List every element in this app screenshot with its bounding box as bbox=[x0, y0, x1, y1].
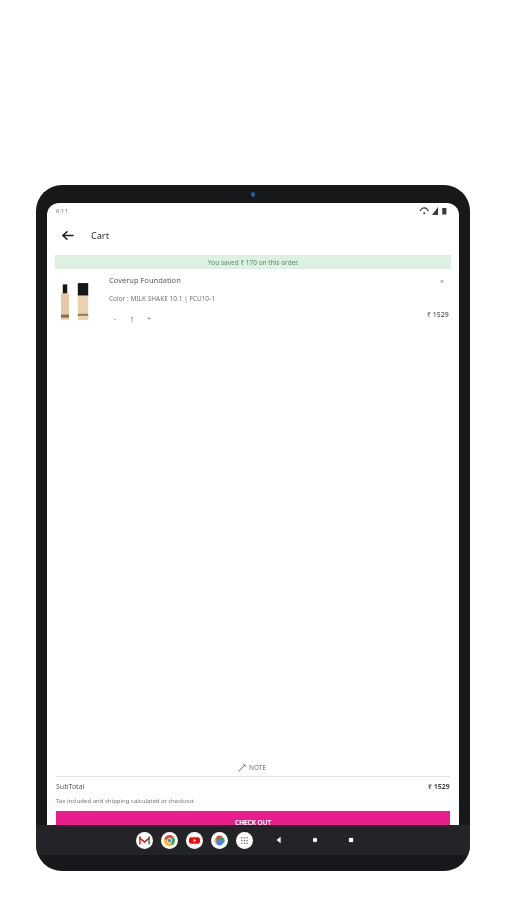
button[interactable]: Back bbox=[56, 224, 78, 246]
button[interactable]: Gmail bbox=[136, 832, 153, 849]
button[interactable]: CHECK OUT bbox=[56, 811, 450, 833]
button[interactable]: Home bbox=[307, 832, 323, 848]
button[interactable]: Photos bbox=[211, 832, 228, 849]
staticText: Tax included and shipping calculated at … bbox=[56, 797, 194, 805]
staticText: 1 bbox=[130, 315, 134, 324]
button[interactable]: Recents bbox=[343, 832, 359, 848]
button[interactable]: Remove item bbox=[435, 275, 449, 289]
staticText: Coverup Foundation bbox=[109, 275, 181, 285]
staticText: + bbox=[147, 314, 152, 324]
staticText: × bbox=[440, 277, 445, 287]
staticText: ₹ 1529 bbox=[428, 782, 450, 792]
button[interactable]: Back bbox=[271, 832, 287, 848]
staticText: You saved ₹ 170 on this order. bbox=[208, 258, 299, 267]
button[interactable]: - bbox=[109, 313, 121, 325]
button[interactable]: NOTE bbox=[47, 758, 459, 776]
staticText: SubTotal bbox=[56, 782, 85, 792]
staticText: Color : MILK SHAKE 10.1 | FCU10-1 bbox=[109, 294, 215, 303]
staticText: ₹ 1529 bbox=[427, 310, 449, 320]
staticText: - bbox=[114, 314, 117, 324]
staticText: NOTE bbox=[249, 763, 267, 772]
staticText: 6:11 bbox=[56, 207, 68, 215]
staticText: CHECK OUT bbox=[235, 818, 272, 827]
staticText: Cart bbox=[91, 229, 110, 241]
button[interactable]: YouTube bbox=[186, 832, 203, 849]
button[interactable]: All apps bbox=[236, 832, 253, 849]
button[interactable]: + bbox=[143, 313, 155, 325]
button[interactable]: Chrome bbox=[161, 832, 178, 849]
